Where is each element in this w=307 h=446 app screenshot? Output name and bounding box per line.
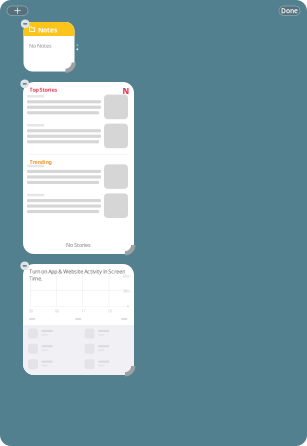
- staticText: Trending: [30, 158, 52, 165]
- staticText: No Notes: [29, 42, 52, 49]
- staticText: 06: [55, 308, 59, 313]
- staticText: 18: [107, 308, 111, 313]
- staticText: 00: [29, 308, 33, 313]
- staticText: Notes: [38, 26, 57, 34]
- staticText: 0: [127, 303, 129, 309]
- staticText: N: [123, 86, 130, 96]
- staticText: No Stories: [66, 241, 91, 249]
- button[interactable]: Remove widget: [21, 19, 30, 28]
- staticText: Turn on App & Website Activity in Screen…: [29, 268, 125, 282]
- staticText: Top Stories: [30, 86, 58, 93]
- staticText: 60m: [123, 273, 131, 278]
- staticText: Done: [281, 6, 298, 15]
- button[interactable]: Remove widget: [20, 261, 29, 270]
- button[interactable]: Resize widget: [124, 365, 136, 377]
- button[interactable]: Remove widget: [20, 79, 29, 88]
- button[interactable]: Done: [279, 6, 300, 15]
- button[interactable]: Resize widget: [65, 62, 76, 73]
- button[interactable]: Add widget: [7, 6, 28, 15]
- staticText: 12: [81, 308, 85, 313]
- staticText: 30m: [123, 288, 131, 293]
- button[interactable]: Resize widget: [124, 244, 136, 256]
